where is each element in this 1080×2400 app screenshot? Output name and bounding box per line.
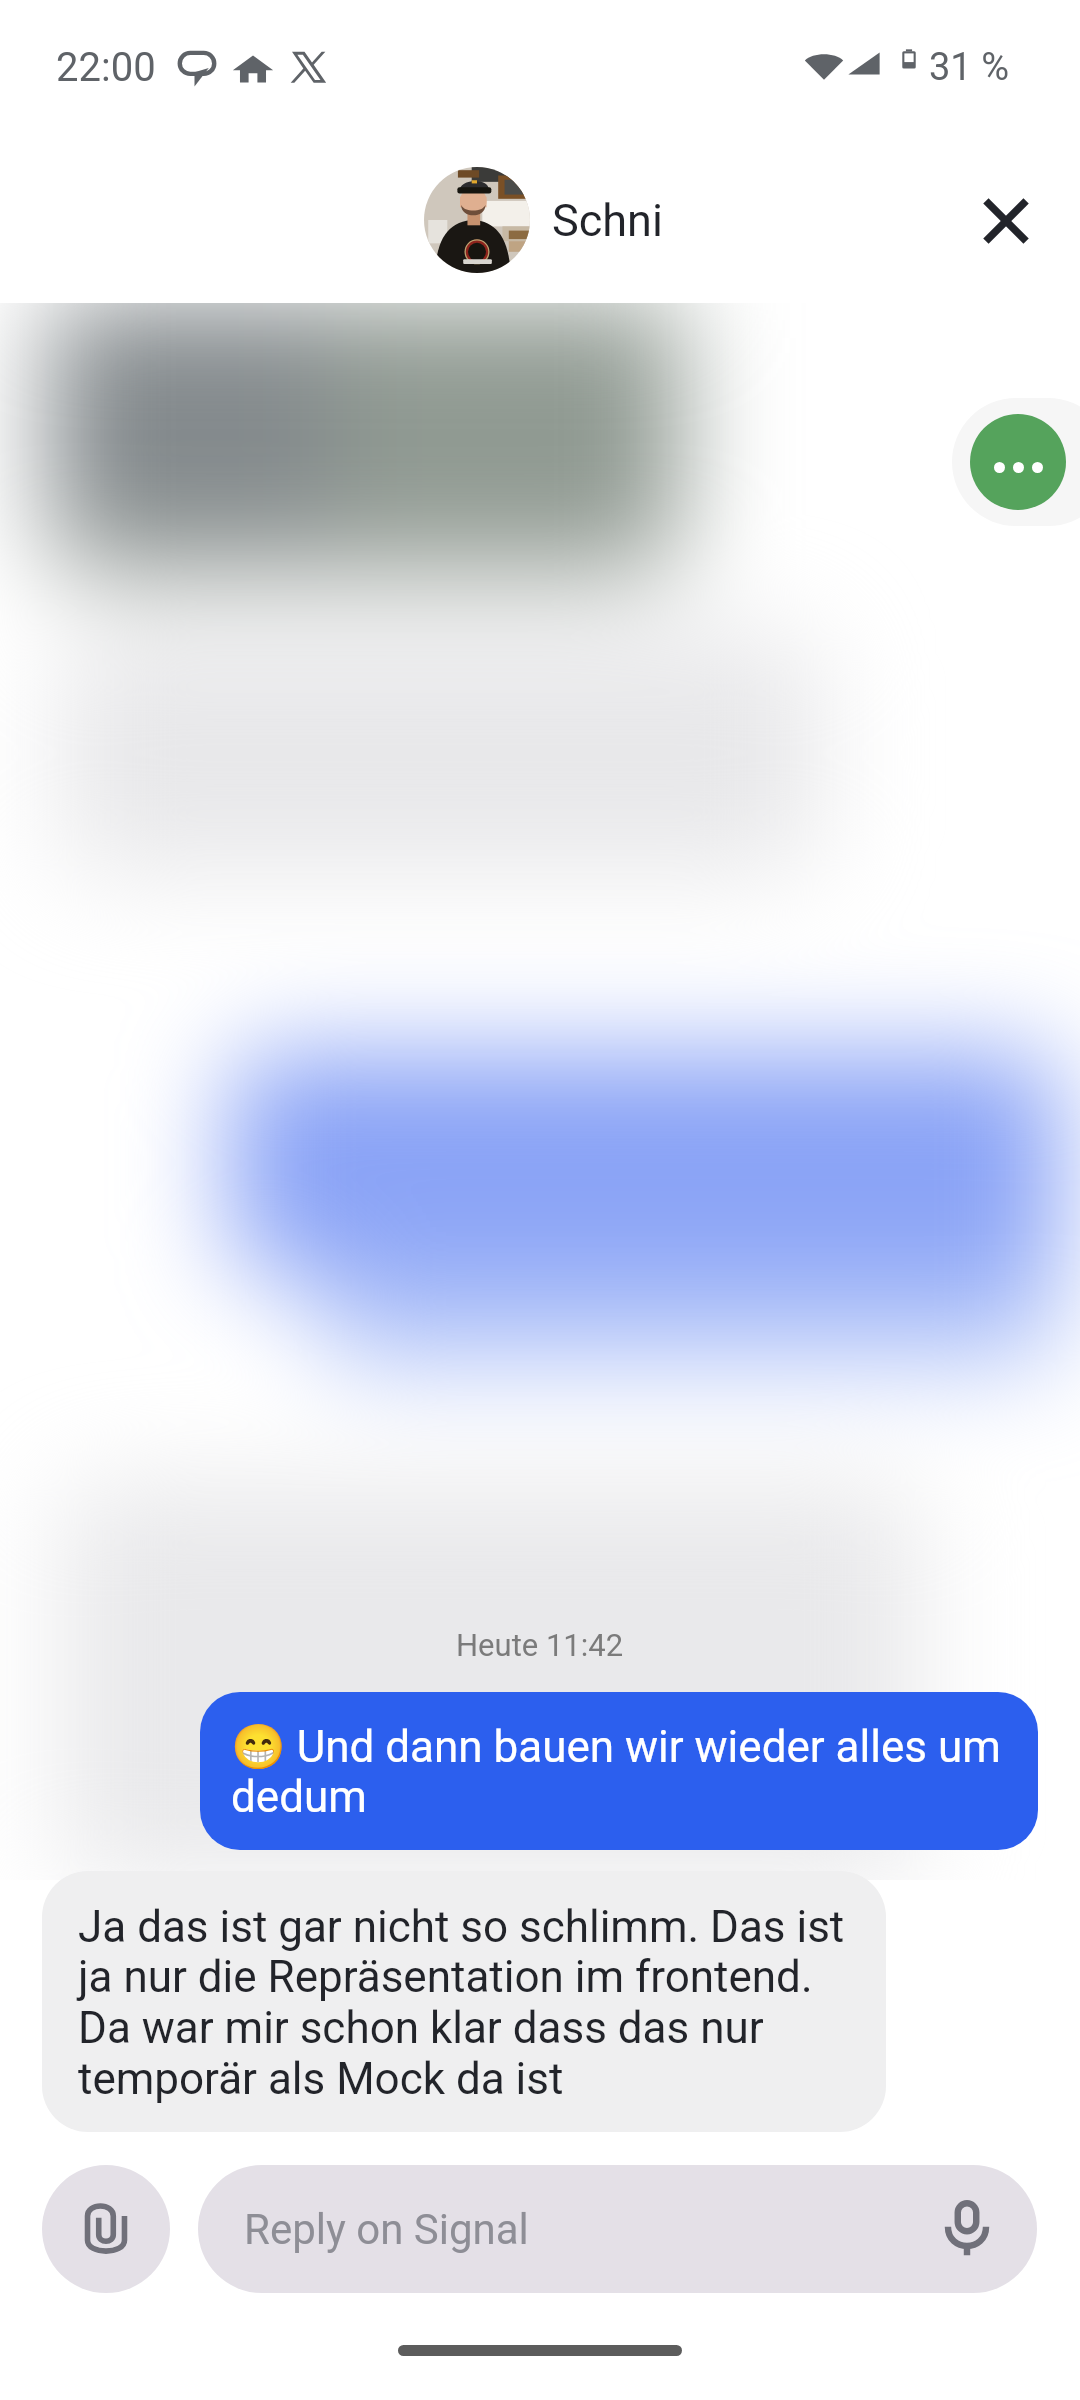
staticText: Reply on Signal (244, 2205, 529, 2254)
button[interactable]: Typing indicator (952, 398, 1080, 526)
staticText: 22:00 (56, 44, 156, 91)
button[interactable]: Schni (424, 167, 663, 273)
button[interactable]: Reply on Signal (198, 2165, 1037, 2293)
button[interactable]: Attach file (42, 2165, 170, 2293)
staticText: Heute 11:42 (456, 1627, 624, 1663)
staticText: Schni (552, 194, 663, 247)
button[interactable]: Voice message (939, 2201, 995, 2257)
staticText: 31 % (929, 45, 1009, 90)
button[interactable]: 😁 Und dann bauen wir wieder alles um ded… (200, 1692, 1038, 1850)
staticText: 😁 Und dann bauen wir wieder alles um ded… (231, 1721, 1012, 1823)
staticText: Ja das ist gar nicht so schlimm. Das ist… (78, 1901, 862, 2105)
button[interactable]: Close (957, 172, 1055, 270)
button[interactable]: Ja das ist gar nicht so schlimm. Das ist… (42, 1871, 886, 2132)
